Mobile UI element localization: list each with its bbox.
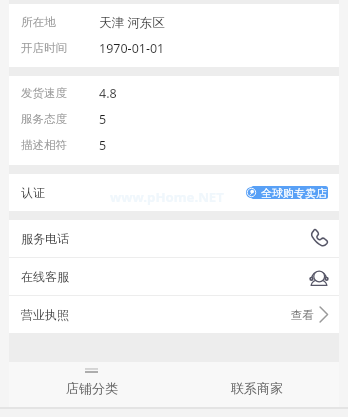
button[interactable]: 服务电话 [9,220,339,257]
staticText: 认证 [21,185,45,200]
staticText: 开店时间 [21,41,67,55]
button[interactable]: 联系商家 [174,362,339,396]
staticText: 4.8 [99,85,117,102]
staticText: 5 [99,111,107,128]
button[interactable]: 营业执照 [9,296,339,333]
staticText: 5 [99,137,107,154]
button[interactable]: 店铺分类 [9,362,174,396]
staticText: 店铺分类 [66,380,118,396]
other: Call [309,229,328,248]
staticText: 服务态度 [21,112,67,126]
staticText: 服务电话 [21,231,69,246]
button[interactable]: 全球购专卖店 [246,186,328,199]
staticText: 联系商家 [231,380,283,396]
staticText: 查看 [291,308,314,322]
staticText: 发货速度 [21,86,67,100]
staticText: 所在地 [21,15,56,29]
button[interactable]: 在线客服 [9,258,339,295]
staticText: 全球购专卖店 [261,186,327,199]
staticText: www.pHome.NET [110,188,224,206]
staticText: 描述相符 [21,138,67,152]
staticText: 天津 河东区 [99,14,165,31]
staticText: 1970-01-01 [99,40,165,57]
other: Online customer service [310,268,328,286]
staticText: 营业执照 [21,307,69,322]
staticText: 在线客服 [21,269,69,284]
